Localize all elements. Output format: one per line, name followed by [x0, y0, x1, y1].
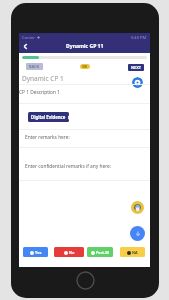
button[interactable]: No	[54, 247, 84, 257]
staticText: 6	[68, 115, 69, 120]
button[interactable]: Download	[130, 226, 145, 241]
staticText: No	[69, 250, 75, 255]
staticText: CP 1 Description 1	[19, 89, 60, 96]
staticText: Yes	[35, 250, 42, 255]
button[interactable]: VW	[80, 64, 90, 69]
button[interactable]: Digital Evidence	[28, 112, 69, 122]
button[interactable]: Information	[132, 77, 143, 88]
staticText: Digital Evidence	[31, 114, 66, 120]
button[interactable]: Yes	[23, 247, 48, 257]
staticText: Dynamic GP 11	[66, 43, 104, 50]
button[interactable]: NA	[120, 247, 145, 257]
button[interactable]: Back	[19, 40, 32, 53]
button[interactable]: Weather	[131, 201, 144, 214]
button[interactable]: NEXT	[128, 64, 144, 71]
staticText: NA	[132, 250, 138, 255]
staticText: NEXT	[131, 65, 141, 70]
button[interactable]: Part-M	[87, 247, 113, 257]
staticText: VW	[82, 65, 88, 69]
staticText: Enter confidential remarks if any here:	[25, 163, 112, 170]
staticText: 5:40 PM	[131, 35, 147, 40]
staticText: BACK	[29, 64, 40, 69]
staticText: Carrier	[22, 35, 36, 40]
staticText: Dynamic CP 1	[22, 74, 64, 83]
staticText: Part-M	[96, 250, 109, 255]
button[interactable]: BACK	[26, 63, 43, 70]
staticText: Enter remarks here:	[25, 134, 70, 141]
